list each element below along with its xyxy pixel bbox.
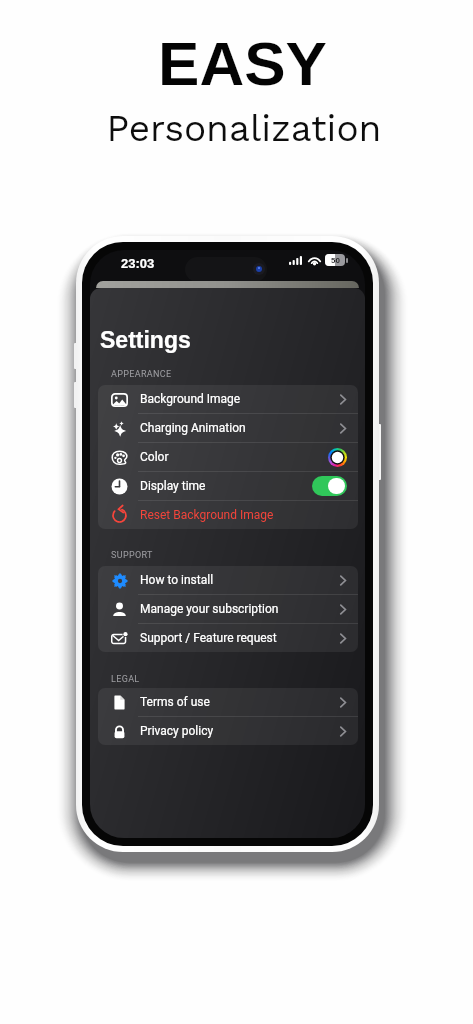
button[interactable]: Terms of use (98, 688, 358, 716)
button[interactable]: How to install (98, 566, 358, 594)
staticText: How to install (140, 573, 214, 587)
staticText: Manage your subscription (140, 602, 279, 616)
staticText: Terms of use (140, 695, 210, 709)
other: Open (339, 423, 347, 434)
staticText: Color (140, 450, 169, 464)
other: Open (339, 604, 347, 615)
button[interactable]: Reset Background Image (98, 501, 358, 529)
staticText: Personalization (106, 107, 382, 150)
staticText: 50 (331, 256, 340, 265)
button[interactable]: Manage your subscription (98, 595, 358, 623)
staticText: APPEARANCE (111, 369, 172, 380)
staticText: Display time (140, 479, 206, 493)
button[interactable]: Background Image (98, 385, 358, 413)
staticText: Reset Background Image (140, 508, 274, 522)
staticText: Privacy policy (140, 724, 214, 738)
other: Open (339, 633, 347, 644)
other: Open (339, 726, 347, 737)
other: Open (339, 575, 347, 586)
other: Open (339, 394, 347, 405)
staticText: Support / Feature request (140, 631, 277, 645)
other: Open (339, 697, 347, 708)
button[interactable]: Privacy policy (98, 717, 358, 745)
staticText: 23:03 (121, 256, 155, 271)
staticText: SUPPORT (111, 550, 153, 561)
staticText: Settings (100, 327, 191, 353)
button[interactable]: Support / Feature request (98, 624, 358, 652)
staticText: Background Image (140, 392, 241, 406)
staticText: LEGAL (111, 674, 140, 685)
staticText: EASY (158, 29, 327, 98)
other: Pick color (328, 448, 347, 467)
button[interactable]: Display time toggle (312, 476, 347, 496)
button[interactable]: Color (98, 443, 358, 471)
staticText: Charging Animation (140, 421, 246, 435)
button[interactable]: Display time (98, 472, 358, 500)
button[interactable]: Charging Animation (98, 414, 358, 442)
